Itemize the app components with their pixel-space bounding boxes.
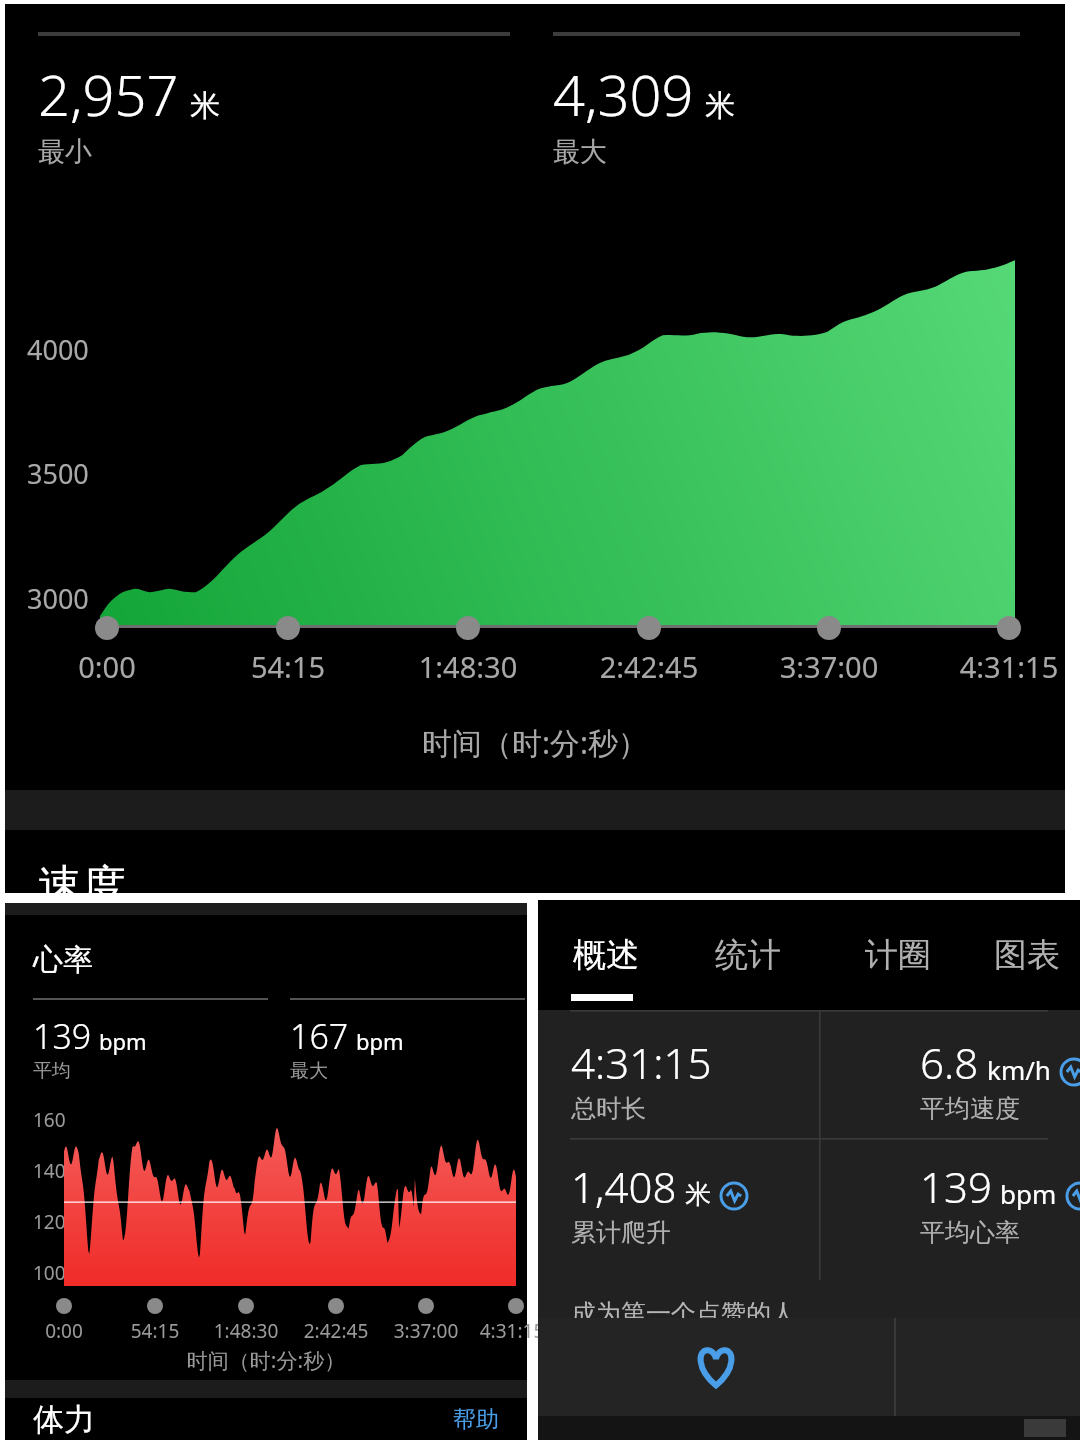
button[interactable]: 体力 bbox=[5, 1398, 527, 1440]
button[interactable]: 概述 bbox=[538, 900, 673, 1010]
staticText: 计圈 bbox=[865, 934, 931, 976]
staticText: 平均速度 bbox=[920, 1093, 1020, 1124]
staticText: 体力 bbox=[33, 1400, 95, 1439]
staticText: 米 bbox=[685, 1178, 711, 1211]
staticText: 3:37:00 bbox=[366, 1318, 486, 1344]
staticText: 139 bbox=[920, 1158, 992, 1215]
staticText: 时间（时:分:秒） bbox=[5, 1346, 527, 1375]
staticText: 3000 bbox=[27, 580, 89, 617]
button[interactable]: 点赞 bbox=[538, 1318, 894, 1416]
staticText: 心率 bbox=[33, 941, 93, 979]
staticText: 160 bbox=[33, 1107, 66, 1133]
staticText: 54:15 bbox=[198, 647, 378, 686]
staticText: 成为第一个点赞的人 bbox=[571, 1298, 796, 1329]
button[interactable]: 1,408 bbox=[571, 1158, 747, 1248]
staticText: 图表 bbox=[994, 934, 1060, 976]
staticText: 帮助 bbox=[453, 1405, 499, 1434]
staticText: 4:31:15 bbox=[452, 1318, 572, 1344]
staticText: 6.8 bbox=[920, 1034, 979, 1091]
staticText: 平均心率 bbox=[920, 1217, 1020, 1248]
staticText: 最大 bbox=[553, 135, 607, 169]
staticText: 100 bbox=[33, 1260, 66, 1286]
staticText: 4:31:15 bbox=[571, 1034, 712, 1091]
staticText: 1,408 bbox=[571, 1158, 677, 1215]
staticText: 总时长 bbox=[571, 1093, 646, 1124]
staticText: 速度 bbox=[38, 859, 126, 914]
staticText: 累计爬升 bbox=[571, 1217, 671, 1248]
staticText: 167 bbox=[290, 1013, 349, 1059]
staticText: bpm bbox=[1000, 1176, 1057, 1211]
staticText: 统计 bbox=[715, 934, 781, 976]
staticText: 时间（时:分:秒） bbox=[5, 722, 1065, 763]
staticText: 最大 bbox=[290, 1059, 328, 1083]
staticText: 米 bbox=[705, 87, 735, 125]
staticText: 2,957 bbox=[38, 56, 179, 132]
staticText: 3500 bbox=[27, 455, 89, 492]
staticText: 54:15 bbox=[95, 1318, 215, 1344]
button[interactable]: 139 bbox=[920, 1158, 1080, 1248]
staticText: 3:37:00 bbox=[739, 647, 919, 686]
button[interactable]: 统计 bbox=[673, 900, 823, 1010]
button[interactable]: 图表 bbox=[973, 900, 1080, 1010]
staticText: 2:42:45 bbox=[559, 647, 739, 686]
staticText: bpm bbox=[99, 1026, 147, 1056]
staticText: 0:00 bbox=[4, 1318, 124, 1344]
staticText: 4,309 bbox=[553, 56, 694, 132]
staticText: 0:00 bbox=[17, 647, 197, 686]
staticText: 139 bbox=[33, 1013, 92, 1059]
staticText: 140 bbox=[33, 1158, 66, 1184]
staticText: 1:48:30 bbox=[378, 647, 558, 686]
staticText: 2:42:45 bbox=[276, 1318, 396, 1344]
staticText: 1:48:30 bbox=[186, 1318, 306, 1344]
staticText: 米 bbox=[190, 87, 220, 125]
button[interactable]: 6.8 bbox=[920, 1034, 1080, 1124]
staticText: 120 bbox=[33, 1209, 66, 1235]
staticText: 平均 bbox=[33, 1059, 71, 1083]
staticText: 4:31:15 bbox=[919, 647, 1080, 686]
staticText: 概述 bbox=[573, 934, 639, 976]
staticText: bpm bbox=[356, 1026, 404, 1056]
staticText: 4000 bbox=[27, 331, 89, 368]
staticText: 最小 bbox=[38, 135, 92, 169]
button[interactable]: 4:31:15 bbox=[571, 1034, 712, 1124]
staticText: km/h bbox=[987, 1052, 1051, 1087]
button[interactable]: 计圈 bbox=[823, 900, 973, 1010]
